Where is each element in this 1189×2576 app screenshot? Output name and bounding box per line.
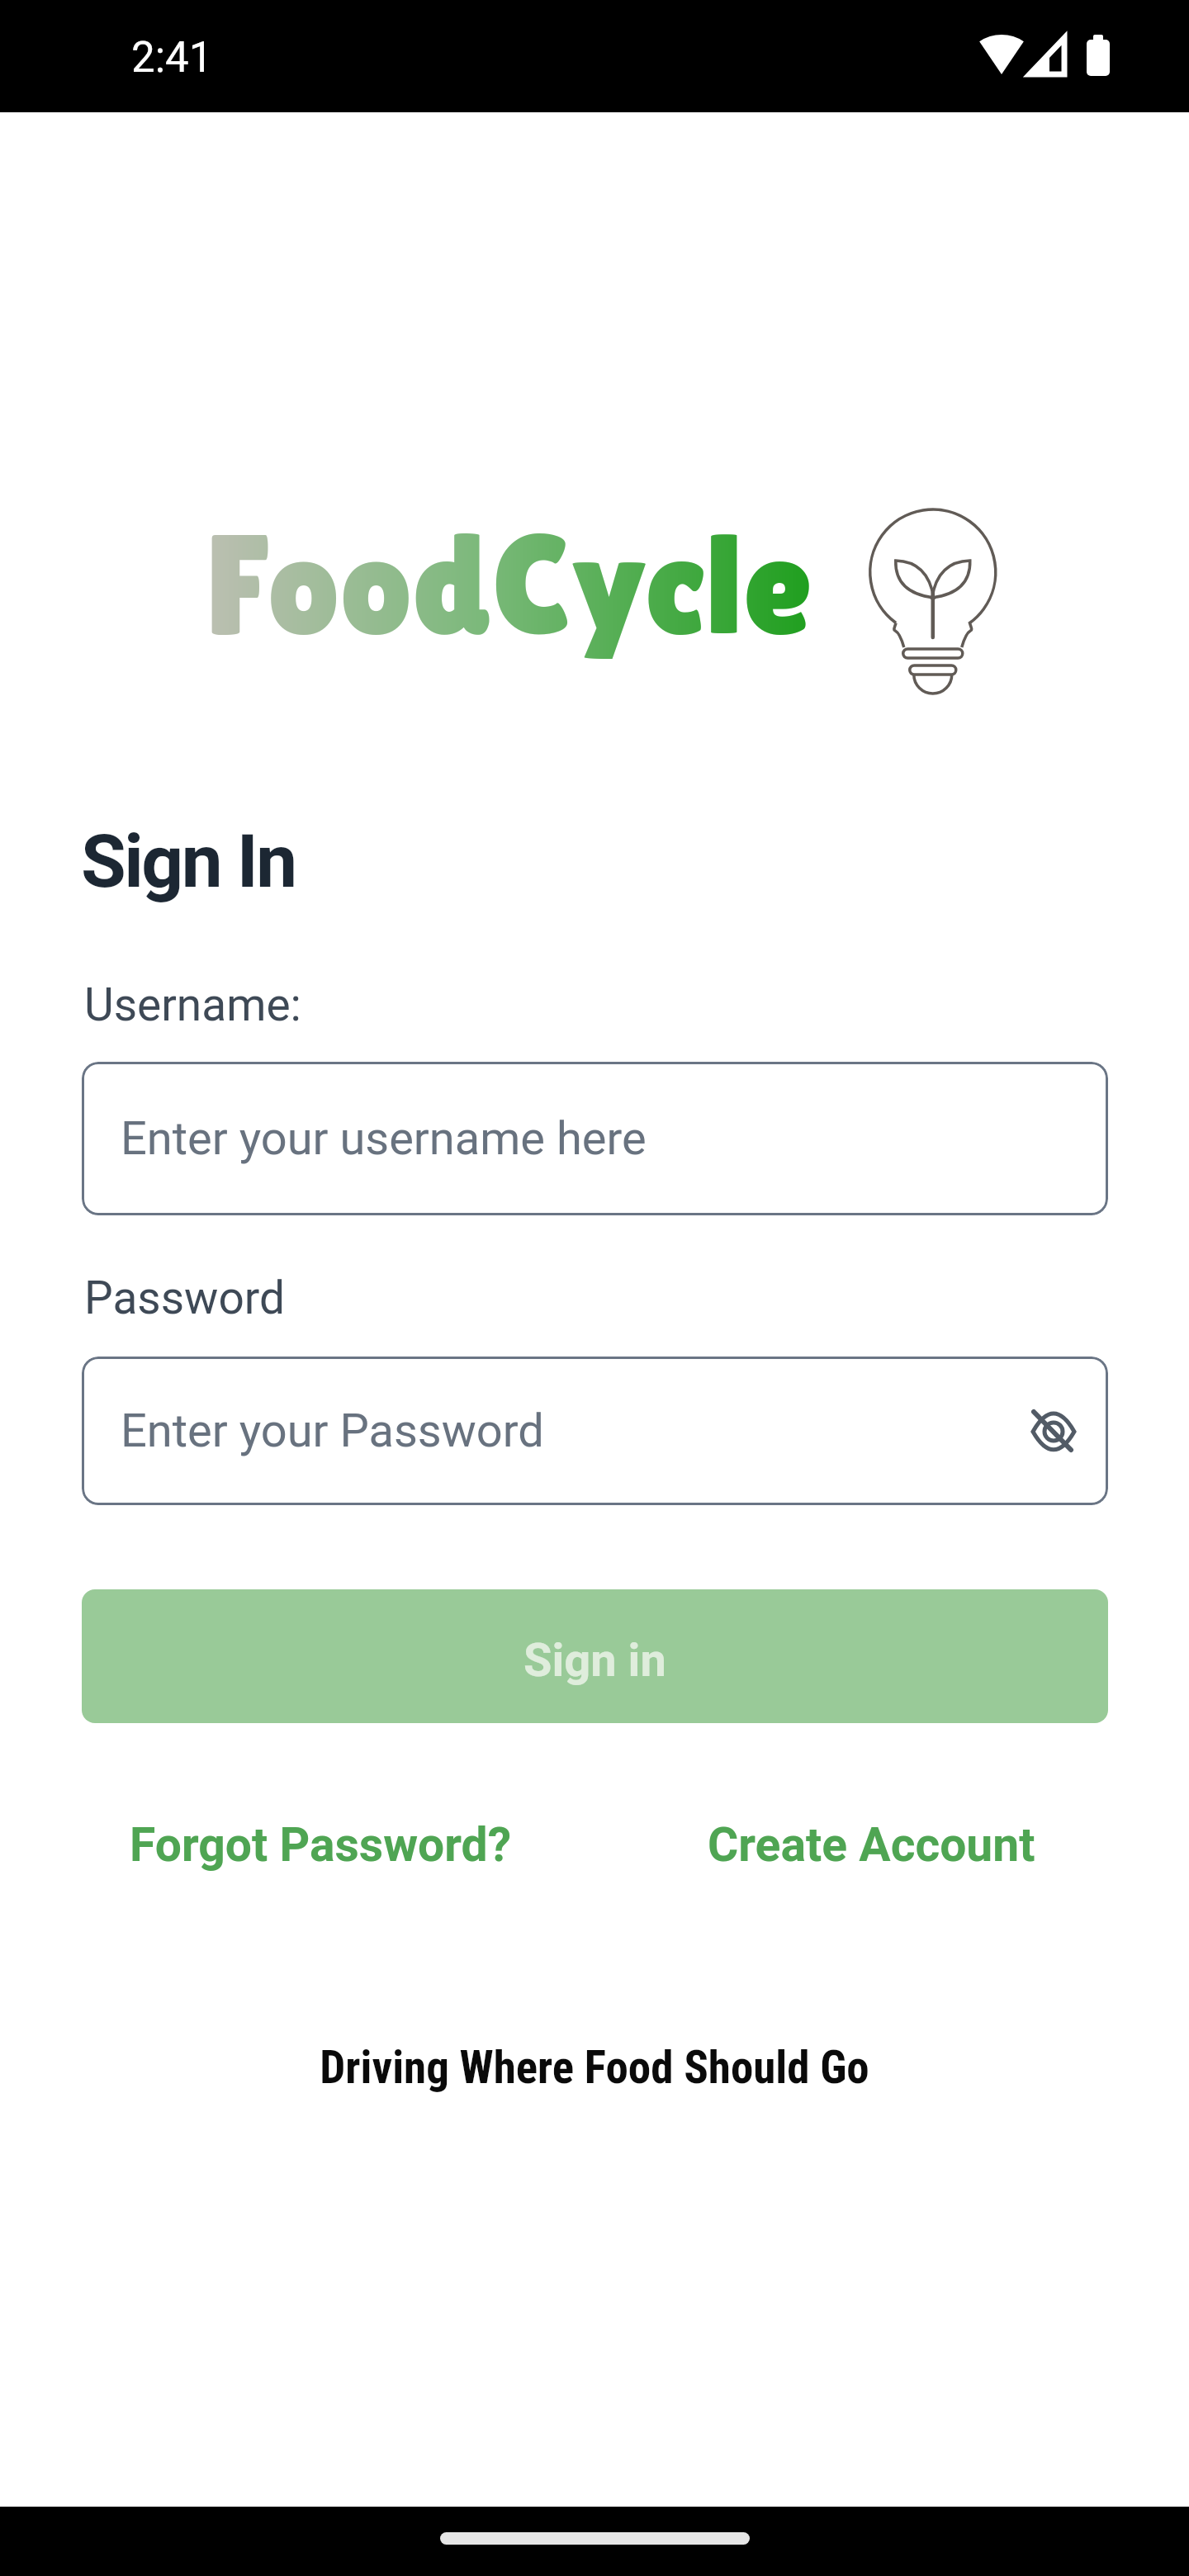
button[interactable] bbox=[440, 2532, 750, 2545]
staticText: FoodCycle bbox=[206, 503, 812, 664]
staticText: Enter your Password bbox=[121, 1404, 544, 1458]
button[interactable]: Enter your username here bbox=[82, 1062, 1108, 1215]
staticText: Sign in bbox=[523, 1633, 666, 1688]
button[interactable]: Sign in bbox=[82, 1589, 1108, 1723]
button[interactable]: Create Account bbox=[694, 1809, 1049, 1881]
staticText: Password bbox=[84, 1271, 285, 1324]
button[interactable]: Forgot Password? bbox=[116, 1809, 525, 1881]
staticText: 2:41 bbox=[131, 33, 213, 83]
staticText: Enter your username here bbox=[121, 1111, 647, 1166]
staticText: Forgot Password? bbox=[130, 1817, 512, 1873]
staticText: Username: bbox=[84, 978, 301, 1031]
button[interactable] bbox=[1024, 1401, 1083, 1461]
button[interactable]: Enter your Password bbox=[82, 1357, 1108, 1505]
staticText: Sign In bbox=[81, 818, 296, 904]
staticText: Driving Where Food Should Go bbox=[0, 2041, 1189, 2094]
staticText: Create Account bbox=[708, 1817, 1035, 1873]
